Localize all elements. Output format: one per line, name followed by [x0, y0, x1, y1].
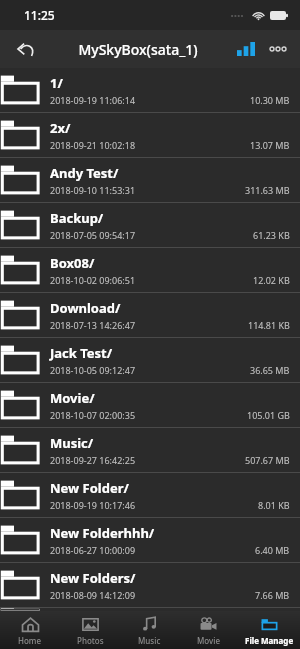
- button[interactable]: Box08/: [0, 248, 300, 293]
- staticText: 114.81 KB: [248, 319, 290, 331]
- staticText: Music/: [50, 434, 94, 452]
- button[interactable]: Photos: [60, 611, 120, 649]
- button[interactable]: Movie/: [0, 383, 300, 428]
- button[interactable]: New Folder/: [0, 473, 300, 518]
- staticText: Movie: [197, 635, 221, 646]
- button[interactable]: Download/: [0, 293, 300, 338]
- staticText: 507.67 MB: [245, 454, 290, 466]
- staticText: New Folders/: [50, 569, 136, 587]
- staticText: 105.01 GB: [247, 409, 290, 421]
- staticText: 2018-09-19 11:06:14: [50, 94, 136, 106]
- staticText: File Manage: [245, 635, 294, 646]
- staticText: New Folderhhh/: [50, 524, 155, 542]
- staticText: Movie/: [50, 389, 95, 407]
- staticText: Box08/: [50, 254, 95, 272]
- button[interactable]: 1/: [0, 68, 300, 113]
- staticText: Backup/: [50, 209, 104, 227]
- staticText: 8.01 KB: [258, 499, 290, 511]
- staticText: Download/: [50, 299, 121, 317]
- staticText: Home: [18, 635, 42, 646]
- button[interactable]: File Manage: [238, 611, 300, 649]
- staticText: 2018-09-10 11:53:31: [50, 184, 136, 196]
- staticText: Andy Test/: [50, 164, 119, 182]
- button[interactable]: Signal: [230, 33, 262, 65]
- staticText: 2018-09-27 16:42:25: [50, 454, 136, 466]
- button[interactable]: New Folders/: [0, 563, 300, 608]
- button[interactable]: New Folderxx/: [0, 608, 300, 611]
- button[interactable]: Music: [120, 611, 179, 649]
- staticText: 311.63 MB: [245, 184, 290, 196]
- staticText: New Folder/: [50, 479, 129, 497]
- staticText: 11:25: [24, 7, 55, 23]
- button[interactable]: 2x/: [0, 113, 300, 158]
- staticText: 13.07 MB: [250, 139, 290, 151]
- button[interactable]: New Folderhhh/: [0, 518, 300, 563]
- staticText: MySkyBox(sata_1): [78, 40, 198, 59]
- button[interactable]: Back: [8, 32, 42, 66]
- staticText: Photos: [77, 635, 104, 646]
- staticText: 2018-10-07 02:00:35: [50, 409, 136, 421]
- button[interactable]: Music/: [0, 428, 300, 473]
- staticText: 2018-09-21 10:02:18: [50, 139, 136, 151]
- staticText: 10.30 MB: [250, 94, 290, 106]
- button[interactable]: Movie: [179, 611, 238, 649]
- staticText: 1/: [50, 74, 63, 92]
- staticText: 2018-07-13 14:26:47: [50, 319, 136, 331]
- staticText: 2018-06-27 10:00:09: [50, 544, 136, 556]
- staticText: 2018-10-05 09:12:47: [50, 364, 136, 376]
- button[interactable]: More options: [262, 33, 294, 65]
- staticText: 2018-07-05 09:54:17: [50, 229, 136, 241]
- button[interactable]: Andy Test/: [0, 158, 300, 203]
- staticText: 36.65 MB: [250, 364, 290, 376]
- staticText: 7.66 MB: [255, 589, 290, 601]
- staticText: 2018-09-19 10:17:46: [50, 499, 136, 511]
- staticText: 61.23 KB: [253, 229, 290, 241]
- staticText: 6.40 MB: [255, 544, 290, 556]
- button[interactable]: Backup/: [0, 203, 300, 248]
- staticText: 2x/: [50, 119, 71, 137]
- staticText: 12.02 KB: [253, 274, 290, 286]
- staticText: Music: [138, 635, 161, 646]
- staticText: 2018-10-02 09:06:51: [50, 274, 136, 286]
- button[interactable]: Jack Test/: [0, 338, 300, 383]
- staticText: 2018-08-09 14:12:09: [50, 589, 136, 601]
- button[interactable]: Home: [0, 611, 60, 649]
- staticText: Jack Test/: [50, 344, 113, 362]
